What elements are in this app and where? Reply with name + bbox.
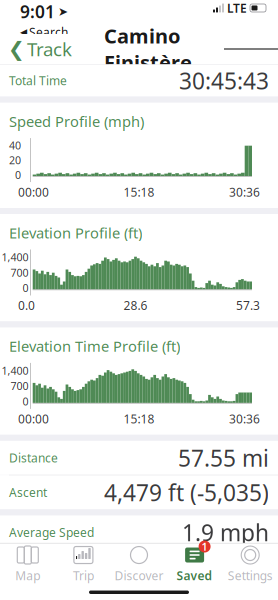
staticText: 1 — [202, 539, 208, 554]
button[interactable]: Total Time — [0, 65, 278, 97]
staticText: Camino Finistère — [104, 22, 192, 75]
button[interactable]: Settings — [222, 540, 278, 586]
staticText: Track — [27, 37, 72, 61]
staticText: Elevation Profile (ft) — [9, 223, 142, 242]
staticText: Settings — [228, 567, 273, 583]
staticText: Speed Profile (mph) — [9, 112, 144, 131]
staticText: 1.9 mph — [182, 517, 269, 547]
staticText: 30:45:43 — [179, 65, 269, 96]
staticText: 00:00 — [18, 411, 49, 427]
staticText: 00:00 — [18, 184, 49, 200]
button[interactable]: Ascent — [0, 475, 278, 509]
staticText: 0 — [22, 394, 28, 408]
staticText: ➤ — [58, 5, 68, 18]
button[interactable]: Trip — [56, 540, 111, 586]
staticText: Total Time — [9, 73, 67, 88]
staticText: ❮ — [8, 38, 25, 60]
staticText: Saved — [177, 567, 213, 583]
staticText: 1,400 — [1, 363, 28, 378]
staticText: Average Speed — [9, 524, 94, 540]
staticText: Trip — [73, 567, 94, 583]
button[interactable]: Distance — [0, 441, 278, 475]
staticText: 0.0 — [18, 297, 35, 313]
staticText: LTE — [227, 0, 247, 16]
staticText: 15:18 — [123, 184, 154, 200]
staticText: 1,400 — [1, 250, 28, 264]
staticText: 57.3 — [236, 297, 260, 313]
staticText: 2.2 mph — [182, 552, 269, 582]
staticText: Search — [29, 24, 68, 40]
staticText: 40 — [9, 138, 21, 152]
staticText: 0 — [22, 281, 28, 295]
staticText: 30:36 — [229, 411, 260, 427]
staticText: 30:36 — [229, 184, 260, 200]
staticText: Elevation Time Profile (ft) — [9, 336, 180, 356]
staticText: Moving Speed — [9, 559, 88, 575]
staticText: 20 — [9, 153, 21, 167]
button[interactable]: ❮ — [0, 31, 72, 67]
staticText: 4,479 ft (-5,035) — [104, 477, 269, 507]
staticText: 15:18 — [123, 411, 154, 427]
staticText: 700 — [10, 265, 28, 280]
button[interactable]: Moving Speed — [0, 550, 278, 584]
staticText: Distance — [9, 450, 58, 466]
staticText: 28.6 — [123, 297, 147, 313]
staticText: ◀ — [20, 27, 27, 37]
staticText: 0 — [15, 168, 21, 182]
button[interactable]: Discover — [111, 540, 167, 586]
staticText: Map — [15, 567, 40, 583]
staticText: 9:01 — [20, 0, 55, 23]
button[interactable]: Average Speed — [0, 515, 278, 549]
staticText: 700 — [10, 379, 28, 393]
staticText: Discover — [114, 567, 163, 583]
staticText: Ascent — [9, 484, 47, 500]
button[interactable]: Map — [0, 540, 56, 586]
button[interactable]: 1 — [167, 540, 222, 586]
staticText: 57.55 mi — [178, 443, 269, 473]
